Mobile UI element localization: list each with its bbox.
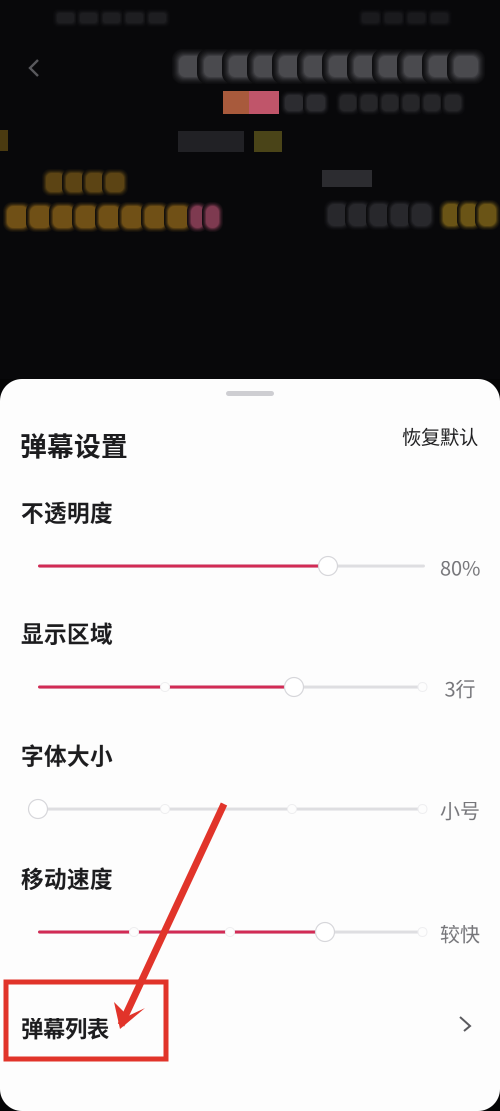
staticText: 移动速度 (21, 861, 113, 894)
staticText: 不透明度 (21, 495, 113, 528)
button[interactable]: Back (14, 48, 54, 88)
button[interactable]: 弹幕列表 (0, 989, 500, 1059)
staticText: 恢复默认 (402, 422, 478, 450)
staticText: 小号 (440, 795, 480, 824)
staticText: 弹幕设置 (20, 425, 128, 464)
staticText: 弹幕列表 (21, 1011, 109, 1043)
button[interactable]: 恢复默认 (378, 421, 478, 451)
staticText: 字体大小 (21, 738, 113, 771)
staticText: 3行 (444, 673, 475, 702)
staticText: 80% (440, 552, 480, 581)
staticText: 较快 (440, 918, 480, 947)
staticText: 显示区域 (21, 616, 113, 649)
